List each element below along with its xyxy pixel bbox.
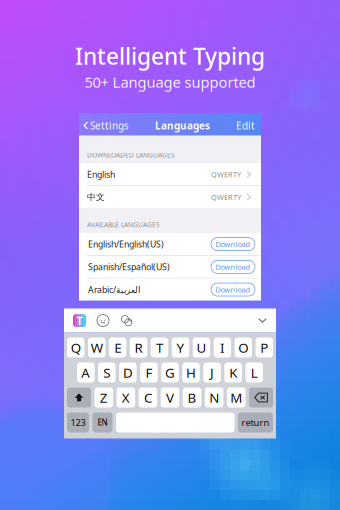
staticText: X [122,389,130,406]
staticText: U [196,339,206,356]
button[interactable]: Q [67,337,84,357]
staticText: J [210,364,214,381]
staticText: V [166,389,174,406]
staticText: DOWNLOADED LANGUAGES [87,151,175,159]
button[interactable]: H [182,362,200,382]
staticText: I [220,339,225,356]
button[interactable]: Delete [249,387,273,407]
staticText: QWERTY [211,192,241,202]
button[interactable]: return [238,412,273,432]
staticText: T [76,313,82,328]
button[interactable]: Download [211,238,255,251]
button[interactable]: V [161,387,179,407]
button[interactable]: C [139,387,157,407]
staticText: Edit [236,119,255,132]
button[interactable]: Edit [236,119,255,132]
button[interactable]: J [203,362,221,382]
button[interactable]: 中文 [79,186,261,208]
button[interactable]: X [117,387,135,407]
button[interactable]: Download [211,260,255,273]
button[interactable]: N [205,387,223,407]
button[interactable]: I [214,337,231,357]
button[interactable]: U [193,337,210,357]
staticText: Download [215,285,250,295]
staticText: English [87,168,115,180]
staticText: T [156,339,163,356]
button[interactable]: R [130,337,147,357]
staticText: L [251,364,258,381]
button[interactable]: Z [94,387,113,407]
staticText: 中文 [87,192,105,203]
staticText: English/English(US) [88,238,164,250]
button[interactable]: W [88,337,105,357]
staticText: O [238,339,248,356]
staticText: B [188,389,197,406]
staticText: W [91,339,103,356]
button[interactable]: F [140,362,158,382]
staticText: G [165,364,175,381]
button[interactable]: T [151,337,168,357]
staticText: P [260,339,268,356]
staticText: Arabic/العربية [88,284,140,295]
staticText: S [103,364,110,381]
button[interactable]: English [79,163,261,185]
staticText: D [123,364,133,381]
staticText: N [209,389,219,406]
staticText: Intelligent Typing [75,41,265,71]
button[interactable]: E [109,337,126,357]
staticText: Download [215,262,250,272]
button[interactable]: S [98,362,116,382]
staticText: EN [97,417,107,428]
staticText: Download [215,239,250,249]
staticText: R [135,339,143,356]
staticText: return [241,416,269,429]
button[interactable] [116,412,234,432]
staticText: Z [100,389,108,406]
button[interactable]: K [224,362,242,382]
staticText: H [186,364,196,381]
button[interactable]: Y [172,337,189,357]
staticText: Spanish/Español(US) [88,261,170,273]
button[interactable]: D [119,362,137,382]
button[interactable]: M [227,387,245,407]
button[interactable]: P [256,337,273,357]
staticText: Settings [90,119,129,132]
staticText: K [229,364,237,381]
staticText: Y [176,339,184,356]
button[interactable]: Settings [83,119,129,132]
button[interactable]: G [161,362,179,382]
staticText: QWERTY [211,169,241,179]
button[interactable]: 123 [67,412,89,432]
button[interactable]: B [183,387,201,407]
button[interactable]: L [245,362,263,382]
staticText: Q [71,339,81,356]
staticText: 123 [70,416,85,429]
button[interactable]: A [77,362,95,382]
button[interactable]: EN [92,412,112,432]
button[interactable]: O [235,337,252,357]
staticText: F [145,364,152,381]
staticText: A [81,364,90,381]
staticText: M [230,389,242,406]
staticText: E [114,339,121,356]
button[interactable]: Download [211,283,255,296]
staticText: AVAILABLE LANGUAGES [87,220,160,229]
button[interactable]: Shift [67,387,91,407]
staticText: 50+ Language supported [84,72,255,92]
staticText: C [144,389,152,406]
staticText: Languages [155,119,210,132]
